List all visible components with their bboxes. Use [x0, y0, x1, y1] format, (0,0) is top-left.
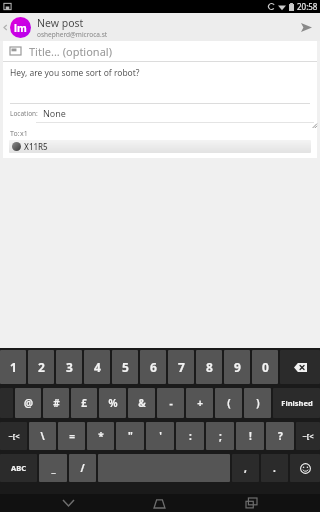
button[interactable]: 9: [224, 350, 250, 384]
staticText: Title... (optional): [29, 44, 112, 59]
staticText: 6: [150, 359, 157, 375]
button[interactable]: Hey, are you some sort of robot?: [3, 62, 317, 103]
button[interactable]: +: [186, 388, 213, 418]
staticText: %: [108, 396, 118, 410]
button[interactable]: Send: [292, 13, 320, 41]
button[interactable]: 5: [112, 350, 138, 384]
staticText: lm: [14, 21, 27, 35]
button[interactable]: :: [176, 422, 204, 450]
button[interactable]: /: [69, 454, 96, 482]
button[interactable]: 8: [196, 350, 222, 384]
staticText: X11R5: [24, 141, 48, 152]
button[interactable]: X11R5: [9, 140, 311, 153]
button[interactable]: Finished: [273, 388, 320, 418]
staticText: -: [169, 396, 173, 410]
button[interactable]: ,: [232, 454, 259, 482]
button[interactable]: Home: [136, 494, 182, 512]
button[interactable]: ;: [206, 422, 234, 450]
staticText: ": [128, 429, 133, 443]
staticText: 5: [122, 359, 129, 375]
button[interactable]: !: [236, 422, 264, 450]
staticText: :: [189, 429, 192, 443]
button[interactable]: 7: [168, 350, 194, 384]
button[interactable]: 6: [140, 350, 166, 384]
staticText: *: [98, 429, 104, 443]
staticText: ~[<: [302, 431, 314, 441]
staticText: ~[<: [8, 431, 20, 441]
button[interactable]: =: [58, 422, 85, 450]
button[interactable]: ": [116, 422, 144, 450]
button[interactable]: \: [29, 422, 56, 450]
button[interactable]: Hide keyboard: [45, 494, 91, 512]
button[interactable]: .: [261, 454, 288, 482]
button[interactable]: Location:: [3, 104, 317, 122]
button[interactable]: Recents: [228, 494, 274, 512]
staticText: New post: [37, 16, 84, 30]
staticText: ): [256, 396, 260, 410]
button[interactable]: 2: [28, 350, 54, 384]
staticText: Location:: [10, 109, 38, 118]
staticText: 2: [38, 359, 45, 375]
staticText: 20:58: [297, 1, 318, 12]
staticText: #: [53, 396, 60, 410]
staticText: 8: [206, 359, 213, 375]
staticText: +: [197, 396, 203, 410]
staticText: ,: [244, 461, 247, 475]
staticText: =: [69, 429, 75, 443]
staticText: To:: [10, 129, 20, 139]
button[interactable]: 0: [252, 350, 278, 384]
staticText: ': [159, 429, 162, 443]
staticText: _: [51, 461, 56, 475]
button[interactable]: (: [215, 388, 242, 418]
button[interactable]: Backspace: [280, 350, 320, 384]
button[interactable]: ): [244, 388, 271, 418]
button[interactable]: ': [146, 422, 174, 450]
button[interactable]: *: [87, 422, 114, 450]
button[interactable]: Back: [0, 13, 10, 41]
button[interactable]: ABC: [0, 454, 37, 482]
staticText: oshepherd@microca.st: [37, 30, 108, 39]
button[interactable]: @: [15, 388, 41, 418]
button[interactable]: ~[<: [0, 422, 27, 450]
staticText: 0: [262, 359, 269, 375]
staticText: (: [227, 396, 231, 410]
button[interactable]: 3: [56, 350, 82, 384]
staticText: x1: [20, 129, 28, 139]
staticText: £: [81, 396, 87, 410]
button[interactable]: ?: [266, 422, 294, 450]
button[interactable]: 1: [0, 350, 26, 384]
staticText: 9: [234, 359, 241, 375]
button[interactable]: 4: [84, 350, 110, 384]
staticText: /: [80, 461, 85, 475]
staticText: ;: [219, 429, 222, 443]
button[interactable]: ~[<: [296, 422, 320, 450]
staticText: 3: [66, 359, 73, 375]
staticText: None: [43, 107, 66, 119]
staticText: .: [273, 461, 276, 475]
staticText: Hey, are you some sort of robot?: [10, 67, 140, 79]
button[interactable]: £: [71, 388, 97, 418]
staticText: ABC: [11, 463, 26, 473]
staticText: 7: [178, 359, 185, 375]
button[interactable]: Title... (optional): [3, 41, 317, 61]
button[interactable]: %: [99, 388, 126, 418]
staticText: ?: [278, 429, 283, 443]
staticText: 4: [94, 359, 101, 375]
staticText: &: [138, 396, 146, 410]
button[interactable]: &: [128, 388, 155, 418]
button[interactable]: -: [157, 388, 184, 418]
staticText: \: [40, 429, 45, 443]
button[interactable]: #: [43, 388, 69, 418]
button[interactable]: Emoji: [290, 454, 320, 482]
staticText: !: [249, 429, 252, 443]
button[interactable]: _: [39, 454, 67, 482]
staticText: 1: [10, 359, 17, 375]
staticText: Finished: [281, 398, 313, 408]
staticText: @: [24, 396, 33, 410]
